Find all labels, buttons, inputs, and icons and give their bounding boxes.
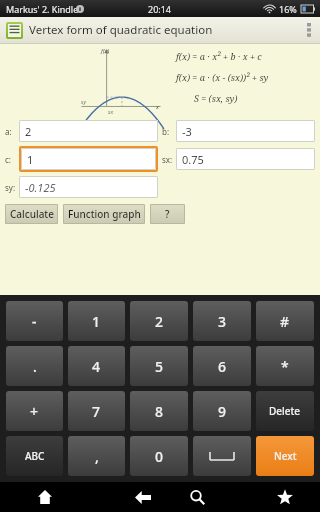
- button[interactable]: -: [6, 301, 63, 341]
- button[interactable]: 1: [68, 301, 125, 341]
- button[interactable]: 0: [130, 436, 188, 476]
- staticText: 20:14: [148, 3, 172, 15]
- staticText: ,: [95, 447, 99, 466]
- staticText: sx: [108, 108, 114, 115]
- staticText: 1: [27, 152, 34, 167]
- button[interactable]: 6: [193, 346, 251, 386]
- staticText: Delete: [269, 404, 301, 418]
- button[interactable]: ?: [150, 204, 185, 224]
- staticText: 1: [92, 312, 101, 331]
- staticText: 3: [218, 312, 227, 331]
- staticText: Next: [274, 449, 297, 463]
- button[interactable]: 5: [130, 346, 188, 386]
- staticText: f(x) = a · (x − (sx))² + sy: [176, 71, 269, 83]
- staticText: -3: [182, 124, 192, 139]
- button[interactable]: #: [256, 301, 314, 341]
- button[interactable]: Delete: [256, 391, 314, 431]
- staticText: sy:: [5, 182, 19, 193]
- staticText: #: [280, 312, 290, 331]
- staticText: ABC: [25, 449, 45, 463]
- staticText: +: [30, 402, 39, 421]
- button[interactable]: -0.125: [19, 176, 158, 198]
- staticText: S = (sx, sy): [194, 92, 238, 104]
- button[interactable]: -3: [176, 120, 315, 142]
- staticText: -: [32, 312, 37, 331]
- staticText: sy: [81, 98, 86, 105]
- staticText: Markus' 2. Kindle: [6, 3, 79, 15]
- staticText: 2: [155, 312, 164, 331]
- button[interactable]: Favorites: [250, 482, 320, 512]
- staticText: 7: [92, 402, 101, 421]
- staticText: Calculate: [10, 207, 54, 221]
- staticText: Function graph: [68, 207, 141, 221]
- staticText: 16%: [279, 3, 297, 15]
- staticText: x: [156, 103, 159, 111]
- button[interactable]: ,: [68, 436, 125, 476]
- staticText: f(x): [101, 47, 110, 55]
- staticText: .: [33, 357, 37, 376]
- button[interactable]: Function graph: [63, 204, 145, 224]
- button[interactable]: 0.75: [176, 148, 315, 170]
- button[interactable]: 2: [19, 120, 158, 142]
- button[interactable]: 4: [68, 346, 125, 386]
- staticText: 0: [155, 447, 164, 466]
- staticText: c:: [5, 154, 19, 165]
- staticText: 0.75: [182, 152, 204, 167]
- staticText: 6: [218, 357, 227, 376]
- button[interactable]: 1: [21, 148, 156, 170]
- staticText: *: [281, 357, 289, 376]
- button[interactable]: *: [256, 346, 314, 386]
- button[interactable]: 8: [130, 391, 188, 431]
- button[interactable]: Next: [256, 436, 314, 476]
- staticText: f(x) = a · x² + b · x + c: [176, 50, 262, 62]
- button[interactable]: 7: [68, 391, 125, 431]
- button[interactable]: Back: [121, 482, 165, 512]
- staticText: ?: [165, 207, 170, 221]
- button[interactable]: 2: [130, 301, 188, 341]
- button[interactable]: .: [6, 346, 63, 386]
- button[interactable]: ABC: [6, 436, 63, 476]
- button[interactable]: +: [6, 391, 63, 431]
- staticText: -0.125: [25, 180, 56, 195]
- button[interactable]: More options: [298, 17, 320, 43]
- staticText: 8: [155, 402, 164, 421]
- staticText: Vertex form of quadratic equation: [29, 22, 213, 38]
- staticText: a:: [5, 126, 19, 137]
- button[interactable]: 9: [193, 391, 251, 431]
- staticText: sx:: [162, 154, 176, 165]
- staticText: 5: [155, 357, 164, 376]
- staticText: b:: [162, 126, 176, 137]
- button[interactable]: Space: [193, 436, 251, 476]
- staticText: 4: [92, 357, 101, 376]
- staticText: 9: [218, 402, 227, 421]
- button[interactable]: Calculate: [5, 204, 58, 224]
- button[interactable]: 3: [193, 301, 251, 341]
- staticText: 2: [25, 124, 32, 139]
- button[interactable]: Search: [175, 482, 219, 512]
- button[interactable]: Home: [0, 482, 90, 512]
